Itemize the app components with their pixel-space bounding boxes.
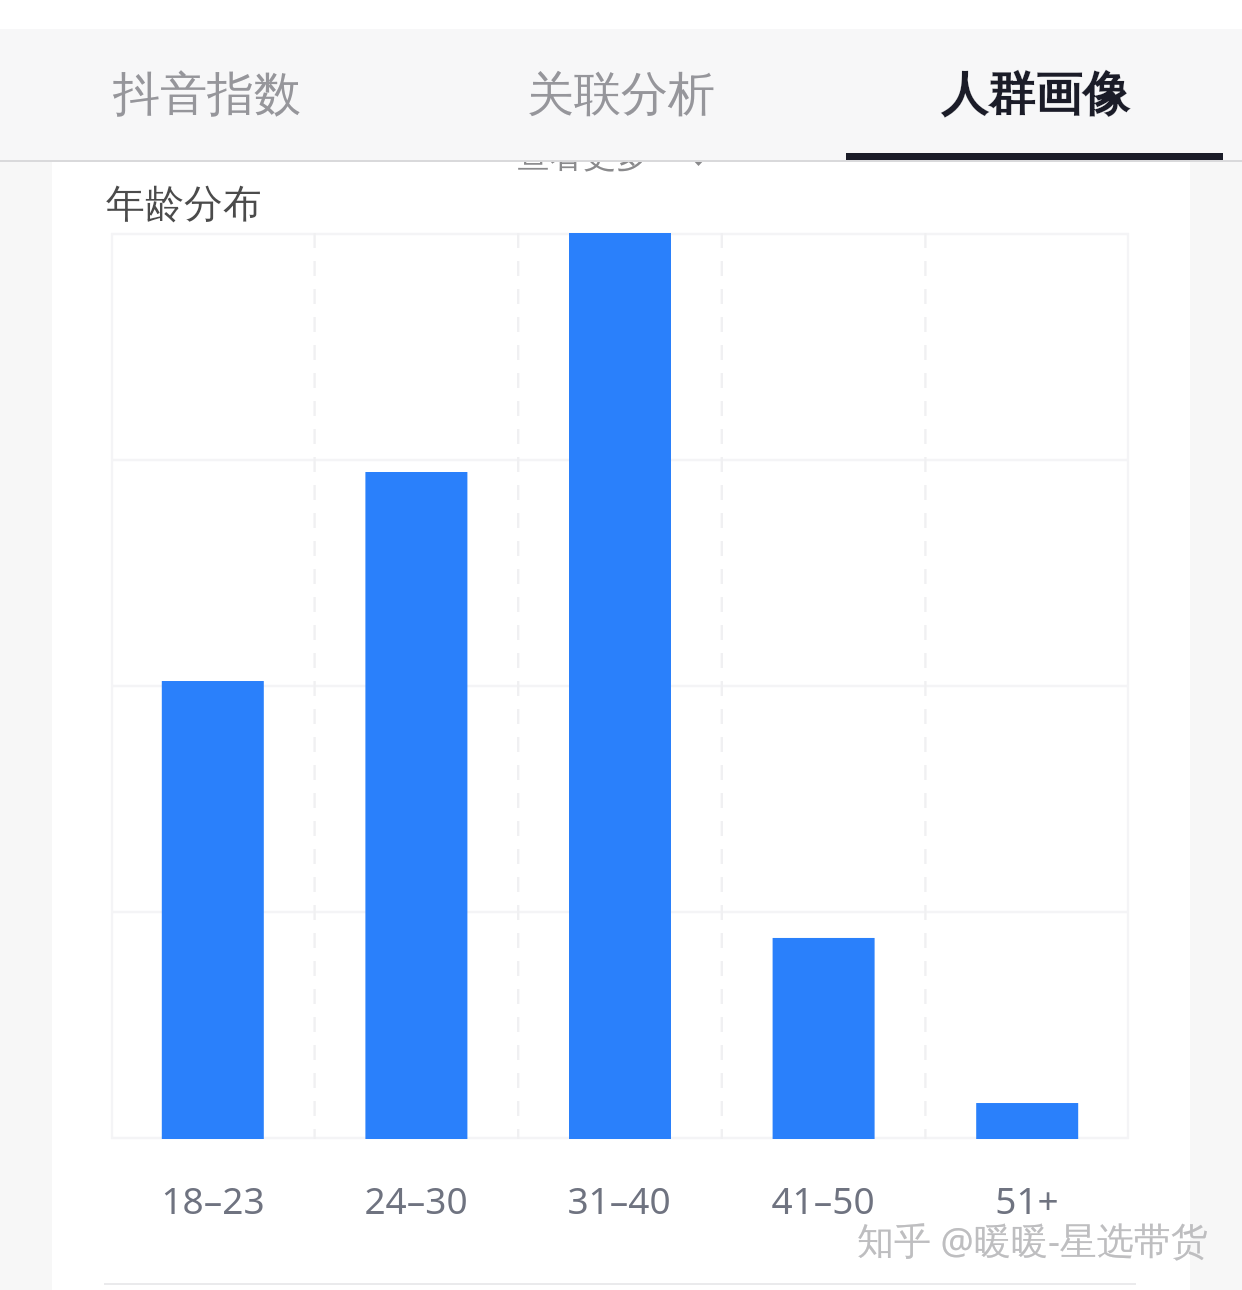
staticText: 抖音指数 bbox=[113, 65, 301, 124]
staticText: 24–30 bbox=[364, 1174, 468, 1224]
staticText: 查看更多 bbox=[517, 135, 649, 177]
staticText: 知乎 @暖暖-星选带货 bbox=[857, 1214, 1208, 1265]
button[interactable]: 人群画像 bbox=[828, 29, 1242, 160]
button[interactable]: 抖音指数 bbox=[0, 29, 414, 160]
button[interactable]: 查看更多 bbox=[505, 118, 720, 182]
staticText: 51+ bbox=[995, 1174, 1059, 1224]
button[interactable]: 关联分析 bbox=[414, 29, 828, 160]
staticText: 18–23 bbox=[161, 1174, 265, 1224]
staticText: 关联分析 bbox=[527, 65, 715, 124]
staticText: 年龄分布 bbox=[106, 179, 262, 228]
staticText: 31–40 bbox=[567, 1174, 671, 1224]
staticText: 人群画像 bbox=[941, 65, 1129, 124]
staticText: 41–50 bbox=[771, 1174, 875, 1224]
